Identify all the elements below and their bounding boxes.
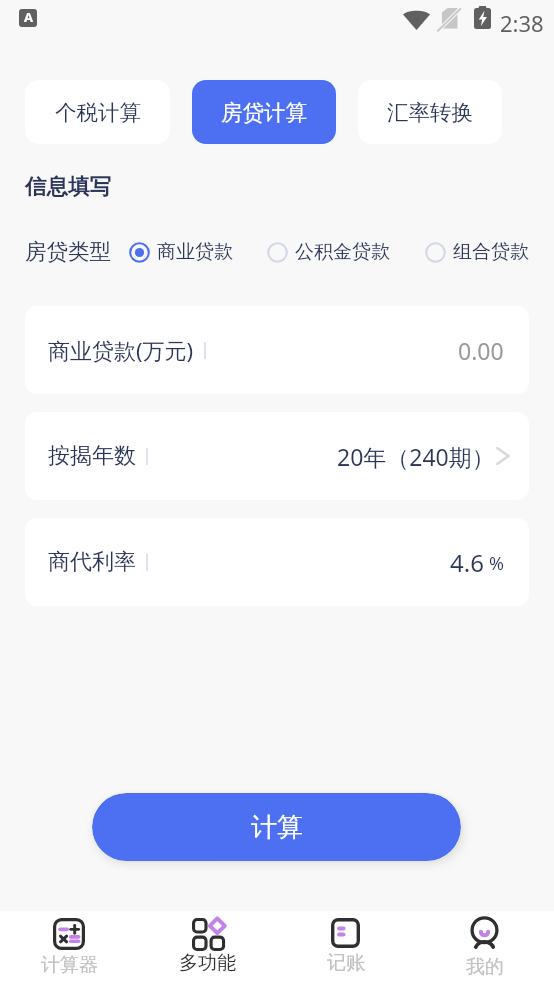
staticText: 我的 [466,955,504,979]
button[interactable]: 公积金贷款 [267,240,390,264]
button[interactable]: 商业贷款 [129,240,233,264]
staticText: 信息填写 [25,173,111,200]
staticText: 房贷计算 [221,99,307,126]
staticText: 2:38 [500,8,544,38]
button[interactable]: 多功能 [138,911,276,984]
button[interactable]: 计算 [92,793,461,861]
staticText: 汇率转换 [387,99,473,126]
staticText: % [489,551,504,576]
staticText: 商业贷款(万元) [48,335,194,365]
staticText: 组合贷款 [453,240,529,264]
button[interactable]: 按揭年数 [25,412,529,500]
staticText: 多功能 [179,951,236,975]
staticText: 房贷类型 [25,238,111,265]
staticText: 计算器 [41,953,98,977]
staticText: 20年（240期） [337,441,495,472]
staticText: 商业贷款 [157,240,233,264]
button[interactable]: 个税计算 [25,80,170,144]
staticText: 个税计算 [55,99,141,126]
staticText: 4.6 [450,546,484,579]
button[interactable]: 商业贷款(万元) [25,306,529,394]
staticText: A [24,9,33,26]
staticText: 商代利率 [48,548,136,576]
button[interactable]: 房贷计算 [192,80,336,144]
button[interactable]: 我的 [415,911,554,984]
staticText: 记账 [327,951,365,975]
staticText: 计算 [251,811,303,844]
staticText: 按揭年数 [48,442,136,470]
button[interactable]: 组合贷款 [425,240,529,264]
button[interactable]: 记账 [276,911,415,984]
button[interactable]: 商代利率 [25,518,529,606]
button[interactable]: 计算器 [0,911,138,984]
button[interactable]: 汇率转换 [358,80,502,144]
staticText: 0.00 [458,335,504,366]
staticText: 公积金贷款 [295,240,390,264]
